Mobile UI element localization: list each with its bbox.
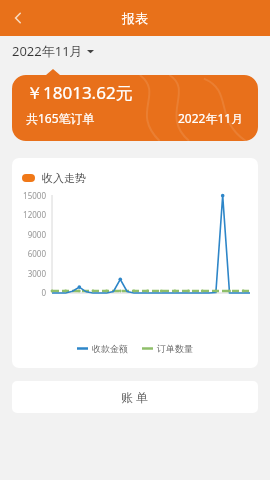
staticText: 报表 [122, 10, 148, 26]
staticText: 9000 [27, 229, 46, 240]
staticText: ￥18013.62元 [26, 81, 133, 104]
staticText: 0 [41, 287, 46, 298]
button[interactable]: Back [0, 0, 36, 36]
staticText: 3000 [27, 268, 46, 279]
staticText: 15000 [23, 190, 46, 201]
staticText: 2022年11月 [12, 42, 83, 60]
button[interactable]: 账 单 [12, 381, 258, 413]
staticText: 6000 [27, 248, 46, 259]
staticText: 账 单 [121, 389, 149, 405]
staticText: 12000 [23, 209, 46, 220]
staticText: 订单数量 [157, 343, 193, 354]
staticText: 收入走势 [42, 171, 86, 185]
button[interactable]: 2022年11月 [12, 42, 94, 60]
staticText: 收款金额 [92, 343, 128, 354]
staticText: 2022年11月 [178, 110, 244, 126]
button[interactable]: ￥18013.62元 [12, 69, 258, 141]
staticText: 共165笔订单 [26, 110, 95, 126]
